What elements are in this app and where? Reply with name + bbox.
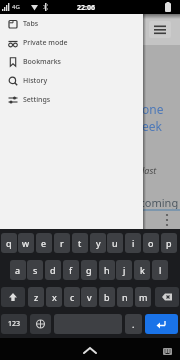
staticText: b: [104, 291, 110, 303]
button[interactable]: Bookmarks: [0, 52, 143, 71]
staticText: Tabs: [23, 19, 39, 29]
button[interactable]: e: [36, 233, 52, 253]
button[interactable]: Settings: [0, 90, 143, 109]
staticText: o: [148, 237, 154, 249]
button[interactable]: r: [54, 233, 70, 253]
staticText: s: [33, 264, 38, 276]
button[interactable]: v: [81, 287, 97, 307]
button[interactable]: w: [18, 233, 34, 253]
button[interactable]: j: [116, 260, 132, 280]
staticText: q: [6, 237, 12, 249]
button[interactable]: m: [135, 287, 151, 307]
button[interactable]: f: [63, 260, 79, 280]
button[interactable]: [30, 314, 51, 334]
button[interactable]: Tabs: [0, 14, 143, 33]
button[interactable]: t: [72, 233, 88, 253]
button[interactable]: i: [125, 233, 141, 253]
staticText: .: [132, 318, 135, 330]
staticText: eek: [142, 118, 162, 134]
staticText: a: [15, 264, 21, 276]
button[interactable]: o: [143, 233, 159, 253]
staticText: z: [34, 291, 39, 303]
button[interactable]: h: [99, 260, 115, 280]
staticText: d: [50, 264, 56, 276]
staticText: r: [60, 237, 64, 249]
staticText: 22:06: [77, 3, 95, 13]
button[interactable]: Private mode: [0, 33, 143, 52]
staticText: h: [104, 264, 110, 276]
button[interactable]: q: [1, 233, 17, 253]
button[interactable]: p: [161, 233, 177, 253]
button[interactable]: k: [134, 260, 150, 280]
button[interactable]: d: [45, 260, 61, 280]
staticText: last: [142, 164, 157, 176]
staticText: 123: [8, 319, 21, 329]
button[interactable]: n: [117, 287, 133, 307]
button[interactable]: History: [0, 71, 143, 90]
staticText: g: [86, 264, 92, 276]
staticText: v: [87, 291, 92, 303]
staticText: t: [78, 237, 82, 249]
staticText: upcoming: [126, 195, 179, 210]
button[interactable]: x: [46, 287, 62, 307]
button[interactable]: c: [64, 287, 80, 307]
staticText: k: [140, 264, 145, 276]
button[interactable]: [145, 314, 178, 334]
staticText: Private mode: [23, 38, 68, 48]
staticText: y: [96, 237, 101, 249]
staticText: Settings: [23, 95, 51, 105]
button[interactable]: z: [28, 287, 44, 307]
button[interactable]: l: [152, 260, 168, 280]
staticText: l: [159, 264, 162, 276]
button[interactable]: g: [81, 260, 97, 280]
staticText: e: [41, 237, 47, 249]
button[interactable]: u: [107, 233, 123, 253]
button[interactable]: y: [90, 233, 106, 253]
staticText: j: [123, 264, 126, 276]
button[interactable]: b: [99, 287, 115, 307]
staticText: x: [52, 291, 57, 303]
staticText: i: [132, 237, 135, 249]
staticText: c: [70, 291, 75, 303]
staticText: one: [142, 101, 164, 117]
staticText: 4G: [12, 3, 20, 11]
staticText: u: [112, 237, 118, 249]
button[interactable]: [155, 287, 179, 307]
staticText: p: [166, 237, 172, 249]
button[interactable]: 123: [1, 314, 27, 334]
button[interactable]: .: [125, 314, 142, 334]
staticText: f: [69, 264, 73, 276]
button[interactable]: [1, 287, 25, 307]
staticText: Bookmarks: [23, 57, 61, 67]
button[interactable]: [149, 21, 171, 38]
button[interactable]: s: [27, 260, 43, 280]
staticText: History: [23, 76, 48, 86]
staticText: m: [139, 291, 148, 303]
button[interactable]: a: [10, 260, 26, 280]
staticText: n: [122, 291, 128, 303]
staticText: w: [22, 237, 30, 249]
